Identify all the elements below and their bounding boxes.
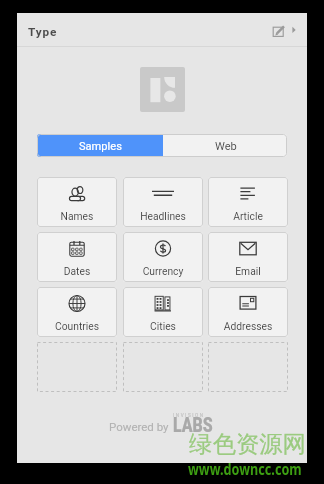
staticText: Article: [208, 210, 288, 222]
staticText: Countries: [37, 320, 117, 332]
button[interactable]: Dates: [37, 232, 117, 282]
button[interactable]: Names: [37, 177, 117, 227]
button[interactable]: Addresses: [208, 287, 288, 337]
staticText: 绿色资源网: [189, 429, 306, 458]
staticText: Web: [215, 140, 237, 153]
button[interactable]: Currency: [123, 232, 203, 282]
button[interactable]: Headlines: [123, 177, 203, 227]
button[interactable]: Email: [208, 232, 288, 282]
button[interactable]: Cities: [123, 287, 203, 337]
staticText: Type: [28, 25, 58, 39]
button[interactable]: Edit: [267, 19, 289, 39]
staticText: Samples: [79, 140, 122, 153]
staticText: Currency: [123, 265, 203, 277]
button[interactable]: Article: [208, 177, 288, 227]
staticText: Powered by: [109, 420, 169, 433]
staticText: www.downcc.com: [188, 457, 302, 479]
staticText: Addresses: [208, 320, 288, 332]
button[interactable]: Play: [288, 22, 300, 36]
button[interactable]: Samples: [37, 134, 163, 157]
button[interactable]: Countries: [37, 287, 117, 337]
staticText: Dates: [37, 265, 117, 277]
staticText: Headlines: [123, 210, 203, 222]
staticText: Email: [208, 265, 288, 277]
staticText: LABS: [173, 414, 213, 437]
staticText: INVISION: [173, 413, 205, 418]
staticText: Cities: [123, 320, 203, 332]
staticText: Names: [37, 210, 117, 222]
button[interactable]: Web: [163, 134, 287, 157]
